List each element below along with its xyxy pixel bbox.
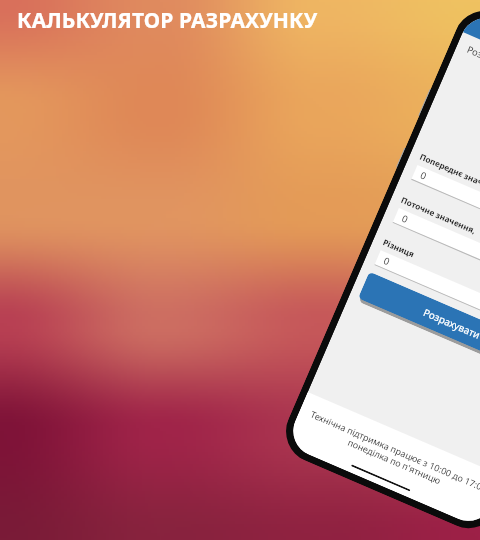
button[interactable]: 0: [412, 165, 480, 258]
staticText: Розрахувати: [421, 305, 480, 342]
staticText: КАЛЬКУЛЯТОР РАЗРАХУНКУ: [17, 6, 318, 35]
button[interactable]: 0: [393, 208, 480, 301]
staticText: Технічна підтримка працює з 10:00 до 17:…: [299, 405, 480, 506]
staticText: 0: [418, 169, 429, 183]
staticText: Різниця: [381, 236, 417, 260]
staticText: Розрахунок: [465, 43, 480, 76]
staticText: 0: [400, 212, 410, 226]
button[interactable]: Розрахувати: [358, 272, 480, 374]
button[interactable]: 0: [375, 250, 480, 343]
staticText: 0: [382, 254, 392, 268]
staticText: Попереднє значення,: [418, 151, 480, 197]
staticText: Поточне значення,: [400, 194, 478, 236]
